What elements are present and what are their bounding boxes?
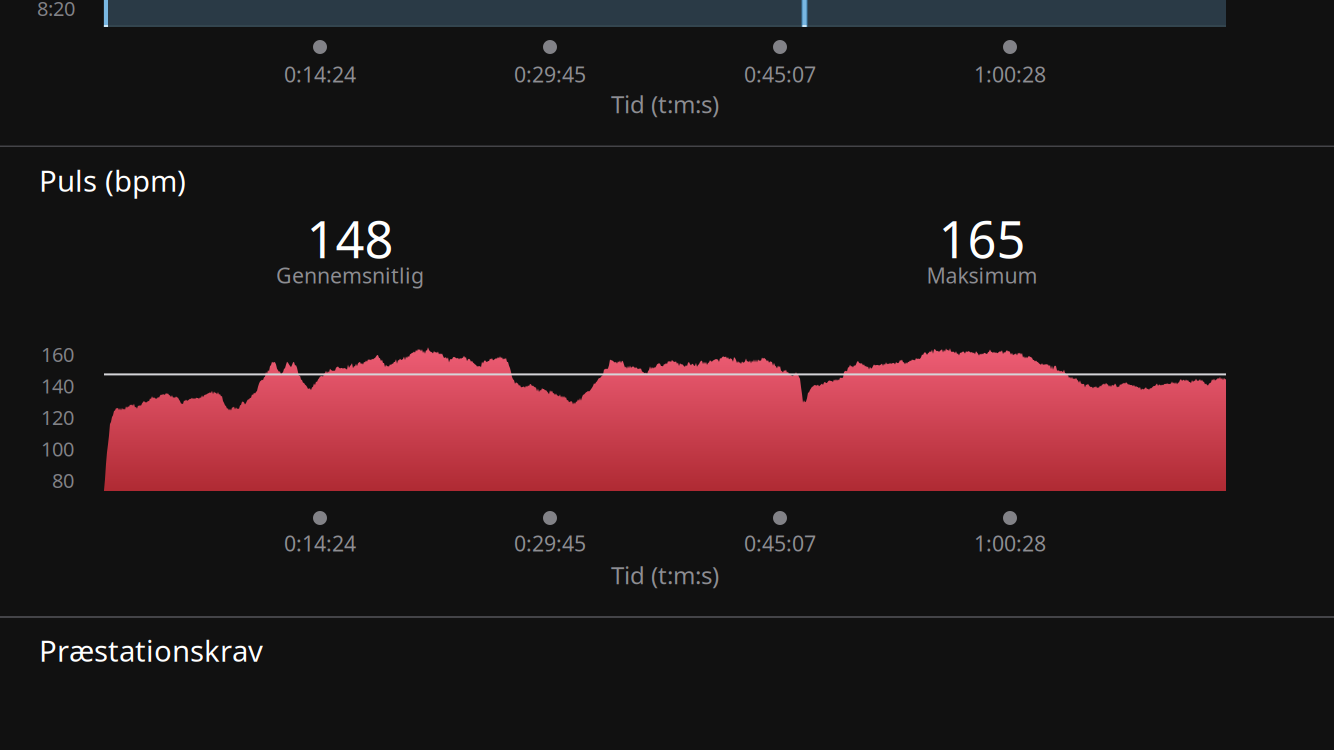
staticText: 140 — [41, 372, 74, 399]
staticText: 148 — [306, 205, 393, 272]
staticText: 165 — [938, 205, 1025, 272]
button[interactable]: Puls (bpm) — [0, 147, 1334, 616]
staticText: 0:29:45 — [514, 529, 586, 557]
button[interactable]: Præstationskrav — [0, 618, 1334, 750]
staticText: Gennemsnitlig — [276, 261, 424, 289]
staticText: Puls (bpm) — [39, 161, 186, 200]
staticText: Maksimum — [926, 261, 1037, 289]
staticText: 0:45:07 — [744, 529, 816, 557]
staticText: 0:45:07 — [744, 60, 816, 88]
staticText: 0:29:45 — [514, 60, 586, 88]
button[interactable]: Tempo-graf — [0, 0, 1334, 145]
staticText: Præstationskrav — [39, 631, 263, 670]
staticText: 1:00:28 — [974, 529, 1046, 557]
staticText: Tid (t:m:s) — [611, 559, 719, 591]
staticText: Tid (t:m:s) — [611, 88, 719, 120]
staticText: 80 — [52, 467, 74, 494]
staticText: 0:14:24 — [284, 60, 356, 88]
staticText: 100 — [41, 435, 74, 462]
staticText: 8:20 — [37, 0, 75, 22]
staticText: 120 — [41, 404, 74, 431]
staticText: 1:00:28 — [974, 60, 1046, 88]
staticText: 160 — [41, 341, 74, 368]
staticText: 0:14:24 — [284, 529, 356, 557]
